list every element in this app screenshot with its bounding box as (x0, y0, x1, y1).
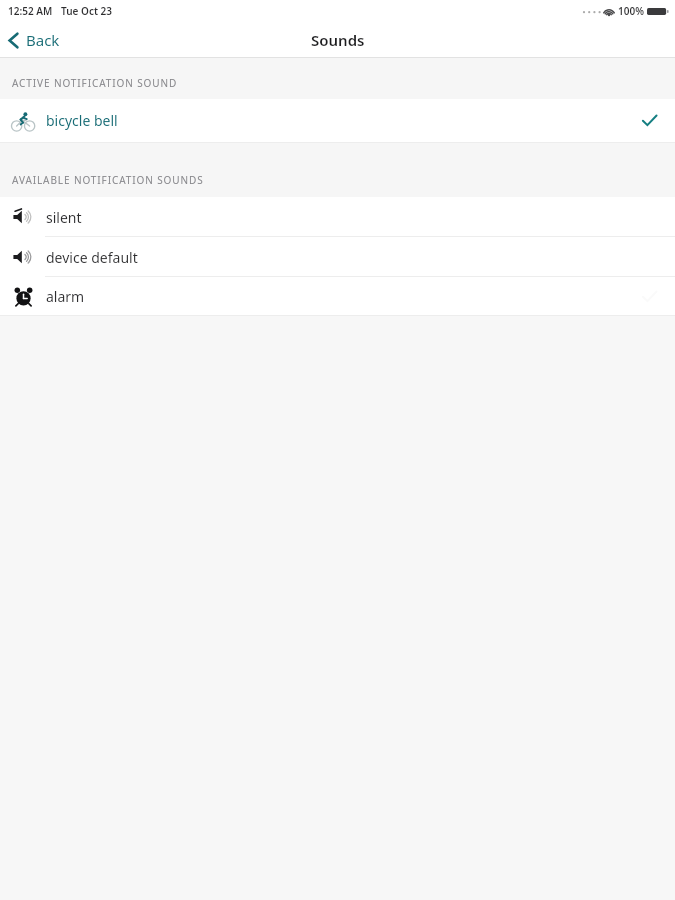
staticText: 100% (618, 4, 644, 18)
button[interactable]: device default (0, 237, 675, 277)
staticText: Back (26, 30, 60, 50)
staticText: silent (46, 208, 82, 227)
staticText: ACTIVE NOTIFICATION SOUND (12, 76, 178, 90)
button[interactable]: Back (0, 26, 72, 54)
button[interactable]: bicycle bell (0, 99, 675, 142)
staticText: device default (46, 248, 138, 267)
staticText: Sounds (311, 30, 365, 50)
staticText: AVAILABLE NOTIFICATION SOUNDS (12, 173, 204, 187)
staticText: 12:52 AM (8, 4, 53, 18)
staticText: bicycle bell (46, 111, 118, 130)
button[interactable]: alarm (0, 277, 675, 315)
staticText: Tue Oct 23 (61, 4, 113, 18)
staticText: alarm (46, 287, 85, 306)
button[interactable]: silent (0, 197, 675, 237)
